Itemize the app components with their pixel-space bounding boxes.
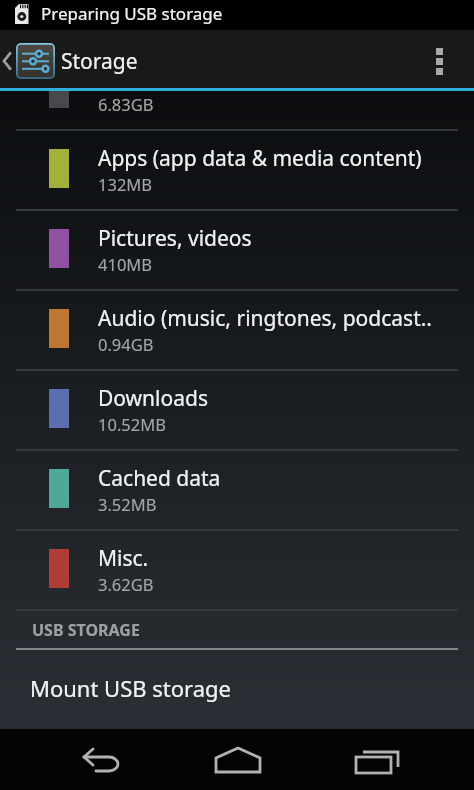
staticText: Audio (music, ringtones, podcast.. [98, 304, 432, 333]
button[interactable]: Cached data [0, 449, 474, 529]
button[interactable] [350, 745, 404, 779]
button[interactable]: Misc. [0, 529, 474, 609]
staticText: 3.62GB [98, 573, 154, 595]
staticText: Downloads [98, 384, 208, 413]
staticText: 10.52MB [98, 413, 166, 435]
button[interactable] [424, 38, 458, 84]
staticText: Cached data [98, 464, 221, 493]
button[interactable]: Pictures, videos [0, 209, 474, 289]
button[interactable]: Audio (music, ringtones, podcast.. [0, 289, 474, 369]
button[interactable]: Downloads [0, 369, 474, 449]
staticText: 6.83GB [98, 93, 154, 115]
staticText: 410MB [98, 253, 153, 275]
staticText: Storage [61, 47, 138, 76]
button[interactable]: Apps (app data & media content) [0, 129, 474, 209]
staticText: Mount USB storage [30, 673, 232, 703]
button[interactable]: Storage [0, 30, 474, 88]
staticText: Misc. [98, 544, 149, 573]
staticText: Pictures, videos [98, 224, 252, 253]
staticText: 3.52MB [98, 493, 157, 515]
button[interactable]: Mount USB storage [0, 650, 474, 729]
button[interactable] [72, 746, 126, 780]
button[interactable]: 6.83GB [0, 91, 474, 129]
staticText: Apps (app data & media content) [98, 144, 422, 173]
button[interactable] [211, 743, 265, 779]
staticText: Preparing USB storage [41, 2, 223, 25]
staticText: 0.94GB [98, 333, 154, 355]
staticText: 132MB [98, 173, 153, 195]
staticText: USB STORAGE [32, 619, 140, 641]
